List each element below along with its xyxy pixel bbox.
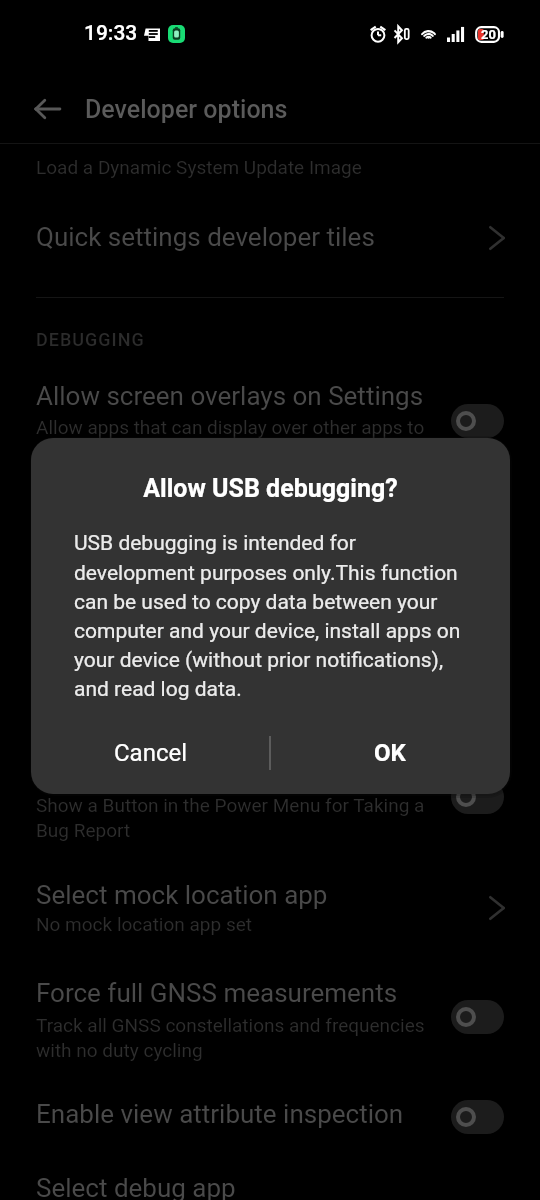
staticText: Allow screen overlays on Settings bbox=[36, 381, 430, 411]
staticText: Cancel bbox=[114, 739, 188, 767]
staticText: DEBUGGING bbox=[36, 329, 510, 350]
staticText: OK bbox=[374, 739, 406, 767]
button[interactable] bbox=[0, 760, 540, 862]
staticText: Allow USB debugging? bbox=[31, 474, 510, 503]
staticText: Force full GNSS measurements bbox=[36, 978, 430, 1008]
button[interactable]: Cancel bbox=[31, 718, 270, 788]
staticText: 19:33 bbox=[84, 21, 138, 46]
staticText: Select mock location app bbox=[36, 880, 450, 910]
button[interactable] bbox=[0, 1160, 540, 1200]
button[interactable] bbox=[0, 1084, 540, 1160]
staticText: Load a Dynamic System Update Image bbox=[36, 156, 510, 178]
button[interactable]: Back bbox=[23, 85, 71, 133]
button[interactable] bbox=[0, 862, 540, 962]
button[interactable]: OK bbox=[270, 718, 510, 788]
button[interactable]: Toggle setting bbox=[451, 1100, 504, 1134]
staticText: Developer options bbox=[85, 95, 288, 124]
button[interactable] bbox=[0, 144, 540, 196]
button[interactable]: Toggle setting bbox=[451, 1000, 504, 1034]
button[interactable] bbox=[0, 962, 540, 1084]
staticText: 20 bbox=[481, 27, 496, 42]
button[interactable]: Toggle setting bbox=[451, 780, 504, 814]
button[interactable] bbox=[0, 362, 540, 474]
staticText: Show a Button in the Power Menu for Taki… bbox=[36, 794, 430, 841]
staticText: No mock location app set bbox=[36, 913, 510, 935]
staticText: Enable view attribute inspection bbox=[36, 1099, 430, 1129]
staticText: USB debugging is intended for developmen… bbox=[74, 531, 466, 701]
staticText: Quick settings developer tiles bbox=[36, 222, 510, 252]
button[interactable] bbox=[0, 196, 540, 296]
button[interactable]: Toggle setting bbox=[451, 404, 504, 438]
staticText: Select debug app bbox=[36, 1173, 430, 1200]
staticText: Track all GNSS constellations and freque… bbox=[36, 1014, 430, 1061]
staticText: Allow apps that can display over other a… bbox=[36, 416, 430, 463]
